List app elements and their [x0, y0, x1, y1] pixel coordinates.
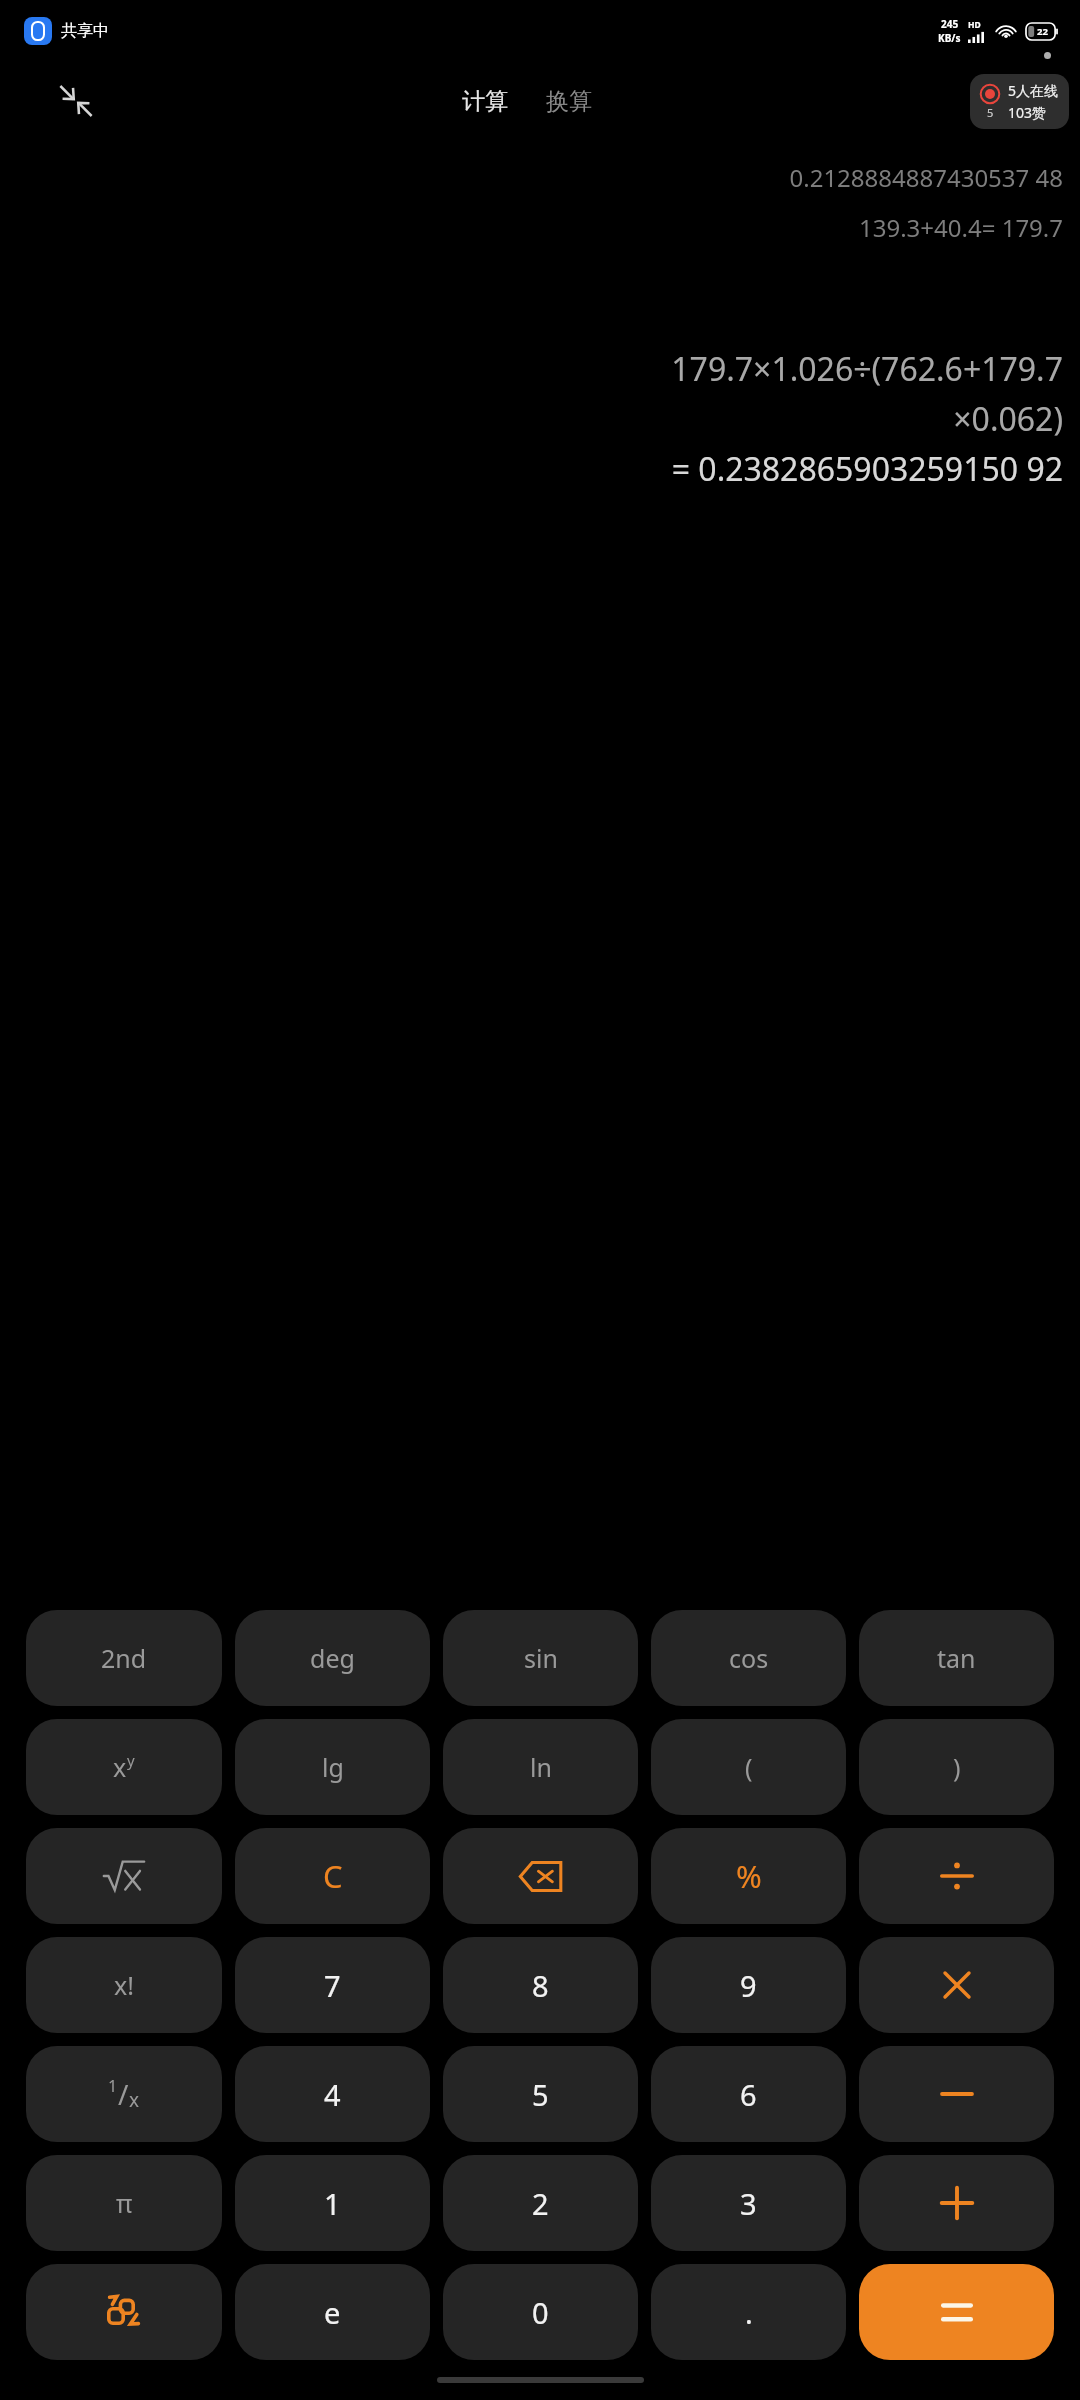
- staticText: ): [953, 1750, 961, 1784]
- staticText: 4: [324, 2075, 341, 2114]
- button[interactable]: 计算: [454, 81, 516, 122]
- staticText: 0.2128884887430537 48: [17, 161, 1063, 194]
- button[interactable]: C: [235, 1828, 430, 1924]
- staticText: KB/s: [938, 31, 961, 45]
- button[interactable]: (: [651, 1719, 846, 1815]
- button[interactable]: Minus: [859, 2046, 1054, 2142]
- staticText: x: [113, 1750, 127, 1784]
- staticText: 2: [532, 2184, 549, 2223]
- staticText: 22: [1037, 25, 1048, 38]
- staticText: 8: [532, 1966, 549, 2005]
- button[interactable]: Backspace: [443, 1828, 638, 1924]
- button[interactable]: tan: [859, 1610, 1054, 1706]
- button[interactable]: %: [651, 1828, 846, 1924]
- staticText: ln: [530, 1750, 552, 1784]
- button[interactable]: x!: [26, 1937, 222, 2033]
- button[interactable]: Divide: [859, 1828, 1054, 1924]
- staticText: 1: [108, 2075, 118, 2097]
- staticText: HD: [968, 19, 981, 31]
- staticText: 245: [941, 17, 959, 31]
- button[interactable]: 换算: [538, 81, 600, 122]
- button[interactable]: Multiply: [859, 1937, 1054, 2033]
- staticText: C: [323, 1855, 343, 1897]
- staticText: 5: [987, 105, 994, 120]
- staticText: 3: [740, 2184, 757, 2223]
- button[interactable]: Plus: [859, 2155, 1054, 2251]
- button[interactable]: 0: [443, 2264, 638, 2360]
- button[interactable]: 6: [651, 2046, 846, 2142]
- staticText: x: [129, 2087, 140, 2113]
- button[interactable]: 2: [443, 2155, 638, 2251]
- staticText: y: [127, 1750, 135, 1770]
- button[interactable]: cos: [651, 1610, 846, 1706]
- button[interactable]: 1: [235, 2155, 430, 2251]
- button[interactable]: Power: [26, 1719, 222, 1815]
- button[interactable]: 7: [235, 1937, 430, 2033]
- button[interactable]: deg: [235, 1610, 430, 1706]
- staticText: 103赞: [1008, 103, 1047, 122]
- staticText: 179.7×1.026÷(762.6+179.7: [17, 347, 1063, 391]
- staticText: ×0.062): [17, 397, 1063, 441]
- button[interactable]: Square root: [26, 1828, 222, 1924]
- button[interactable]: 8: [443, 1937, 638, 2033]
- button[interactable]: Collapse: [52, 77, 100, 125]
- staticText: cos: [729, 1641, 769, 1675]
- button[interactable]: 9: [651, 1937, 846, 2033]
- staticText: x!: [114, 1968, 134, 2002]
- button[interactable]: 5: [970, 74, 1069, 129]
- button[interactable]: 4: [235, 2046, 430, 2142]
- staticText: deg: [310, 1641, 355, 1675]
- staticText: 7: [324, 1966, 341, 2005]
- staticText: 139.3+40.4= 179.7: [17, 211, 1063, 244]
- staticText: e: [324, 2293, 341, 2332]
- staticText: %: [736, 1855, 762, 1897]
- staticText: sin: [524, 1641, 558, 1675]
- button[interactable]: Equals: [859, 2264, 1054, 2360]
- staticText: π: [116, 2186, 133, 2220]
- staticText: 共享中: [61, 21, 109, 41]
- staticText: /: [118, 2075, 129, 2113]
- button[interactable]: 2nd: [26, 1610, 222, 1706]
- staticText: 9: [740, 1966, 757, 2005]
- button[interactable]: ln: [443, 1719, 638, 1815]
- button[interactable]: 5: [443, 2046, 638, 2142]
- staticText: 5: [532, 2075, 549, 2114]
- staticText: 6: [740, 2075, 757, 2114]
- button[interactable]: π: [26, 2155, 222, 2251]
- staticText: 2nd: [101, 1641, 147, 1675]
- button[interactable]: lg: [235, 1719, 430, 1815]
- staticText: 计算: [462, 87, 508, 116]
- staticText: .: [745, 2293, 753, 2332]
- staticText: 1: [324, 2184, 341, 2223]
- button[interactable]: Formulas: [26, 2264, 222, 2360]
- staticText: = 0.2382865903259150 92: [17, 447, 1063, 491]
- staticText: 换算: [546, 87, 592, 116]
- button[interactable]: 3: [651, 2155, 846, 2251]
- button[interactable]: .: [651, 2264, 846, 2360]
- staticText: lg: [322, 1750, 344, 1784]
- button[interactable]: e: [235, 2264, 430, 2360]
- button[interactable]: Reciprocal: [26, 2046, 222, 2142]
- button[interactable]: ): [859, 1719, 1054, 1815]
- staticText: tan: [937, 1641, 976, 1675]
- staticText: 0: [532, 2293, 549, 2332]
- staticText: 5人在线: [1008, 81, 1059, 100]
- staticText: (: [745, 1750, 753, 1784]
- button[interactable]: sin: [443, 1610, 638, 1706]
